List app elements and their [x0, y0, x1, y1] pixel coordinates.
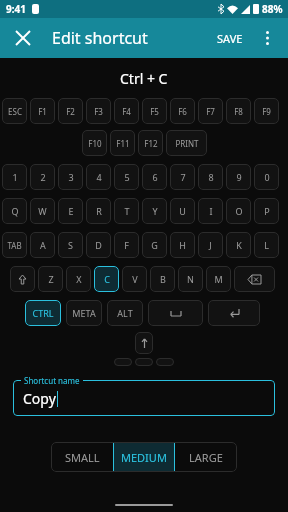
staticText: 9:41 — [6, 2, 26, 16]
staticText: X — [76, 273, 82, 285]
button[interactable]: G — [142, 232, 167, 258]
button[interactable]: CTRL — [25, 300, 61, 326]
button[interactable]: B — [150, 266, 175, 292]
staticText: F5 — [150, 106, 159, 117]
button[interactable]: V — [122, 266, 147, 292]
button[interactable]: Backspace — [234, 266, 275, 292]
button[interactable]: F12 — [138, 130, 163, 156]
button[interactable]: M — [206, 266, 231, 292]
button[interactable]: 1 — [2, 164, 27, 190]
button[interactable]: K — [226, 232, 251, 258]
button[interactable]: LARGE — [175, 442, 237, 472]
button[interactable]: J — [198, 232, 223, 258]
button[interactable]: Arrow right — [156, 358, 174, 366]
button[interactable]: Copy — [13, 380, 275, 416]
button[interactable]: 7 — [170, 164, 195, 190]
button[interactable]: 2 — [30, 164, 55, 190]
staticText: 2 — [40, 171, 46, 183]
button[interactable]: 9 — [226, 164, 251, 190]
button[interactable]: F10 — [82, 130, 107, 156]
button[interactable]: Arrow down — [135, 358, 153, 366]
button[interactable]: F6 — [170, 98, 195, 124]
button[interactable]: 6 — [142, 164, 167, 190]
staticText: Ctrl + C — [120, 69, 168, 88]
button[interactable]: C — [94, 266, 119, 292]
button[interactable]: SAVE — [217, 31, 243, 46]
staticText: V — [132, 273, 138, 285]
button[interactable]: E — [58, 198, 83, 224]
button[interactable]: F8 — [226, 98, 251, 124]
button[interactable]: N — [178, 266, 203, 292]
button[interactable]: 8 — [198, 164, 223, 190]
staticText: MEDIUM — [121, 450, 167, 465]
button[interactable]: 4 — [86, 164, 111, 190]
staticText: E — [68, 205, 74, 217]
staticText: N — [187, 273, 194, 285]
staticText: F12 — [144, 138, 158, 149]
button[interactable]: ArrowUp — [135, 332, 153, 354]
button[interactable]: Space — [148, 300, 203, 326]
staticText: G — [151, 239, 158, 251]
staticText: 1 — [12, 171, 18, 183]
button[interactable]: PRINT — [166, 130, 207, 156]
button[interactable]: Q — [2, 198, 27, 224]
button[interactable]: META — [66, 300, 102, 326]
button[interactable]: 5 — [114, 164, 139, 190]
button[interactable]: Arrow left — [114, 358, 132, 366]
button[interactable]: Enter — [208, 300, 260, 326]
button[interactable]: ESC — [2, 98, 27, 124]
button[interactable]: L — [254, 232, 279, 258]
button[interactable]: O — [226, 198, 251, 224]
staticText: 8 — [208, 171, 214, 183]
button[interactable]: TAB — [2, 232, 27, 258]
staticText: 9 — [236, 171, 242, 183]
button[interactable]: R — [86, 198, 111, 224]
staticText: F2 — [66, 106, 75, 117]
button[interactable]: F2 — [58, 98, 83, 124]
staticText: U — [179, 205, 186, 217]
button[interactable]: ALT — [107, 300, 143, 326]
button[interactable]: U — [170, 198, 195, 224]
button[interactable]: MEDIUM — [113, 442, 175, 472]
button[interactable]: F3 — [86, 98, 111, 124]
staticText: Shortcut name — [24, 375, 80, 386]
button[interactable]: F4 — [114, 98, 139, 124]
button[interactable]: F5 — [142, 98, 167, 124]
staticText: S — [68, 239, 73, 251]
button[interactable]: F9 — [254, 98, 279, 124]
button[interactable]: F7 — [198, 98, 223, 124]
button[interactable]: I — [198, 198, 223, 224]
button[interactable]: 0 — [254, 164, 279, 190]
staticText: 4 — [96, 171, 102, 183]
button[interactable]: 3 — [58, 164, 83, 190]
staticText: ALT — [117, 307, 133, 319]
button[interactable]: F11 — [110, 130, 135, 156]
button[interactable]: F — [114, 232, 139, 258]
button[interactable]: X — [66, 266, 91, 292]
button[interactable]: P — [254, 198, 279, 224]
button[interactable]: S — [58, 232, 83, 258]
button[interactable]: SMALL — [51, 442, 113, 472]
staticText: Y — [152, 205, 158, 217]
button[interactable]: Close — [8, 23, 38, 53]
button[interactable]: Shift — [10, 266, 35, 292]
staticText: CTRL — [32, 307, 54, 319]
staticText: F11 — [116, 138, 130, 149]
staticText: T — [124, 205, 130, 217]
button[interactable]: More options — [252, 23, 282, 53]
button[interactable]: D — [86, 232, 111, 258]
staticText: F8 — [234, 106, 243, 117]
staticText: SMALL — [65, 450, 100, 465]
button[interactable]: W — [30, 198, 55, 224]
button[interactable]: A — [30, 232, 55, 258]
button[interactable]: H — [170, 232, 195, 258]
staticText: ESC — [8, 106, 22, 117]
button[interactable]: F1 — [30, 98, 55, 124]
staticText: Edit shortcut — [52, 27, 148, 49]
button[interactable]: Z — [38, 266, 63, 292]
staticText: 3 — [68, 171, 74, 183]
button[interactable]: T — [114, 198, 139, 224]
button[interactable]: Y — [142, 198, 167, 224]
staticText: D — [95, 239, 102, 251]
staticText: F7 — [206, 106, 215, 117]
